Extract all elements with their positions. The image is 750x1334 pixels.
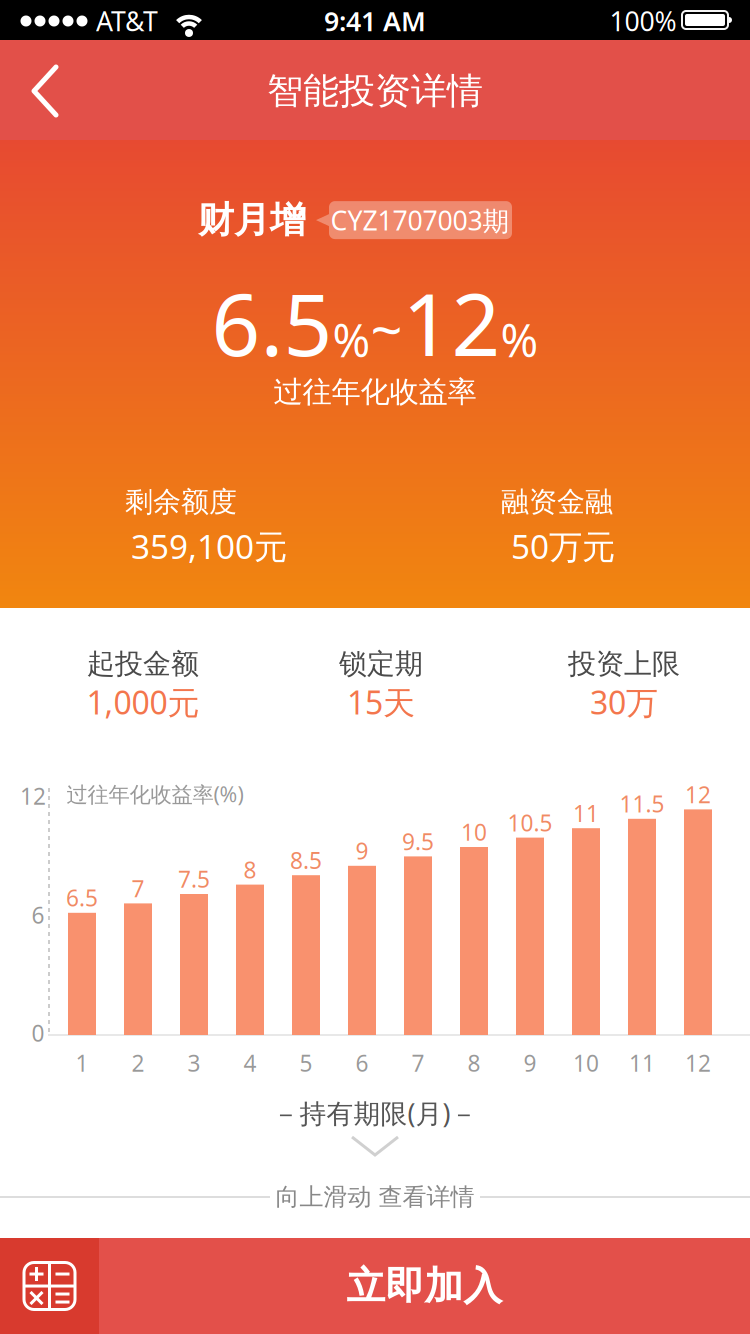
staticText: 12: [402, 266, 500, 380]
staticText: 6.5: [66, 883, 98, 913]
staticText: 向上滑动 查看详情: [275, 1182, 474, 1212]
staticText: 7.5: [178, 864, 210, 894]
staticText: 12: [20, 781, 46, 811]
staticText: 10: [461, 817, 487, 847]
staticText: －持有期限(月)－: [272, 1095, 477, 1131]
staticText: 过往年化收益率(%): [66, 780, 243, 808]
staticText: 9.5: [402, 826, 434, 856]
staticText: 起投金额: [87, 647, 199, 681]
staticText: 8: [243, 854, 256, 885]
staticText: 100%: [609, 3, 676, 39]
staticText: 1,000元: [86, 681, 199, 723]
staticText: 6: [355, 1048, 368, 1078]
staticText: 11.5: [619, 789, 664, 819]
staticText: 财月增: [198, 198, 306, 242]
staticText: 12: [685, 779, 711, 809]
staticText: 0: [31, 1018, 44, 1048]
staticText: %: [332, 309, 370, 370]
staticText: %: [500, 309, 538, 370]
staticText: 11: [629, 1048, 655, 1078]
staticText: 6.5: [211, 266, 332, 380]
staticText: 6: [31, 900, 44, 930]
staticText: 1: [75, 1048, 88, 1078]
staticText: 50万元: [511, 524, 615, 568]
staticText: AT&T: [96, 3, 158, 39]
staticText: 融资金融: [501, 485, 613, 519]
staticText: 7: [131, 873, 144, 903]
staticText: 30万: [590, 681, 658, 723]
staticText: 9: [523, 1048, 536, 1078]
staticText: 8.5: [290, 845, 322, 875]
staticText: 10: [573, 1048, 599, 1078]
staticText: 9:41 AM: [324, 3, 426, 39]
staticText: 15天: [347, 681, 415, 723]
staticText: 5: [299, 1048, 312, 1078]
staticText: 359,100元: [131, 524, 287, 568]
staticText: 锁定期: [339, 647, 423, 681]
staticText: ~: [370, 291, 402, 366]
staticText: 立即加入: [346, 1262, 502, 1310]
staticText: 智能投资详情: [267, 69, 483, 113]
staticText: 投资上限: [568, 647, 680, 681]
staticText: 10.5: [507, 807, 552, 838]
staticText: 9: [355, 836, 368, 866]
staticText: 8: [467, 1048, 480, 1078]
staticText: CYZ1707003期: [330, 202, 509, 238]
staticText: 剩余额度: [125, 485, 237, 519]
staticText: 3: [187, 1048, 200, 1078]
staticText: 2: [131, 1048, 144, 1078]
staticText: 12: [685, 1048, 711, 1078]
staticText: 4: [243, 1048, 256, 1078]
staticText: 过往年化收益率: [273, 374, 476, 410]
staticText: 11: [573, 798, 599, 828]
staticText: 7: [411, 1048, 424, 1078]
